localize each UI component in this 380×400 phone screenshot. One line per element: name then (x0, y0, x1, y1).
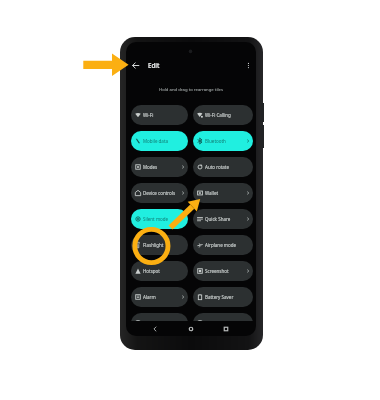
button[interactable]: Eye comfort (131, 313, 188, 321)
staticText: Edit (148, 61, 160, 69)
button[interactable]: Wi-Fi Calling (193, 105, 253, 125)
button[interactable]: Airplane mode (193, 235, 253, 255)
button[interactable]: Silent mode (131, 209, 188, 229)
staticText: Airplane mode (205, 242, 237, 248)
staticText: Screenshot (205, 268, 229, 274)
staticText: Quick Share (205, 216, 231, 222)
staticText: Mobile data (143, 138, 169, 144)
staticText: Wi-Fi (143, 112, 154, 118)
button[interactable]: Device controls (131, 183, 188, 203)
staticText: Hotspot (143, 268, 160, 274)
button[interactable]: More options (242, 59, 254, 71)
button[interactable]: Hotspot (131, 261, 188, 281)
staticText: Flashlight (143, 242, 164, 248)
staticText: Battery Saver (205, 294, 234, 300)
button[interactable]: Battery Saver (193, 287, 253, 307)
button[interactable]: Auto rotate (193, 157, 253, 177)
staticText: Auto rotate (205, 164, 229, 170)
staticText: Wallet (205, 190, 219, 196)
button[interactable]: Screenshot (193, 261, 253, 281)
button[interactable]: Wi-Fi (131, 105, 188, 125)
button[interactable]: Back (137, 321, 173, 336)
button[interactable]: Recents (208, 321, 243, 336)
staticText: Bluetooth (205, 138, 226, 144)
button[interactable]: Back (129, 59, 141, 71)
button[interactable]: Dark mode (193, 313, 253, 321)
staticText: Alarm (143, 294, 156, 300)
staticText: Hold and drag to rearrange tiles (126, 86, 256, 92)
button[interactable]: Bluetooth (193, 131, 253, 151)
staticText: Device controls (143, 190, 176, 196)
button[interactable]: Wallet (193, 183, 253, 203)
staticText: Silent mode (143, 216, 169, 222)
button[interactable]: Quick Share (193, 209, 253, 229)
button[interactable]: Modes (131, 157, 188, 177)
button[interactable]: Mobile data (131, 131, 188, 151)
button[interactable]: Home (173, 321, 208, 336)
staticText: Modes (143, 164, 158, 170)
button[interactable]: Alarm (131, 287, 188, 307)
button[interactable]: Flashlight (131, 235, 188, 255)
staticText: Wi-Fi Calling (205, 112, 231, 118)
